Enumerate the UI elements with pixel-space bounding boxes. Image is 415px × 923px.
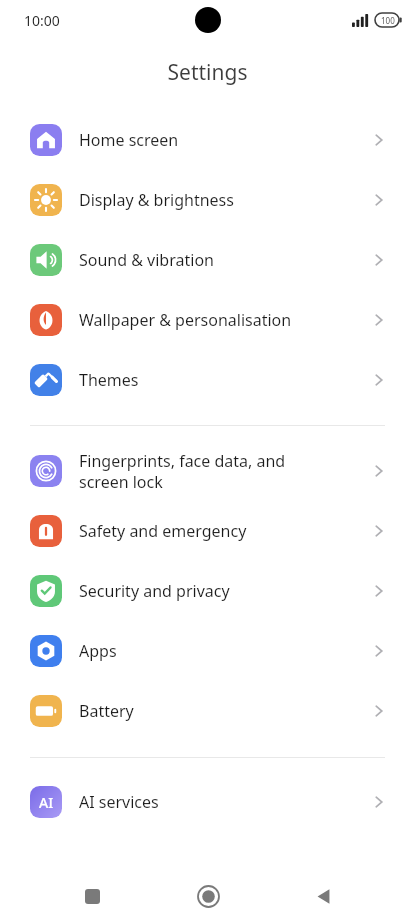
- staticText: Fingerprints, face data, and screen lock: [79, 450, 369, 493]
- button[interactable]: Battery: [0, 681, 415, 741]
- staticText: Wallpaper & personalisation: [79, 309, 369, 331]
- button[interactable]: Themes: [0, 350, 415, 410]
- button[interactable]: Apps: [0, 621, 415, 681]
- staticText: 100: [381, 15, 395, 26]
- staticText: Display & brightness: [79, 189, 369, 211]
- button[interactable]: Home: [184, 872, 232, 920]
- staticText: Security and privacy: [79, 580, 369, 602]
- button[interactable]: Back: [299, 872, 347, 920]
- button[interactable]: Safety and emergency: [0, 501, 415, 561]
- button[interactable]: Sound & vibration: [0, 230, 415, 290]
- button[interactable]: AI: [0, 772, 415, 832]
- button[interactable]: Security and privacy: [0, 561, 415, 621]
- staticText: 10:00: [24, 11, 60, 30]
- staticText: Sound & vibration: [79, 249, 369, 271]
- staticText: Apps: [79, 640, 369, 662]
- staticText: Home screen: [79, 129, 369, 151]
- staticText: Safety and emergency: [79, 520, 369, 542]
- button[interactable]: Fingerprints, face data, and screen lock: [0, 441, 415, 501]
- staticText: Themes: [79, 369, 369, 391]
- button[interactable]: Display & brightness: [0, 170, 415, 230]
- staticText: Settings: [0, 58, 415, 87]
- button[interactable]: Recent apps: [68, 872, 116, 920]
- button[interactable]: Wallpaper & personalisation: [0, 290, 415, 350]
- staticText: AI services: [79, 791, 369, 813]
- staticText: AI: [39, 793, 54, 812]
- staticText: Battery: [79, 700, 369, 722]
- button[interactable]: Home screen: [0, 110, 415, 170]
